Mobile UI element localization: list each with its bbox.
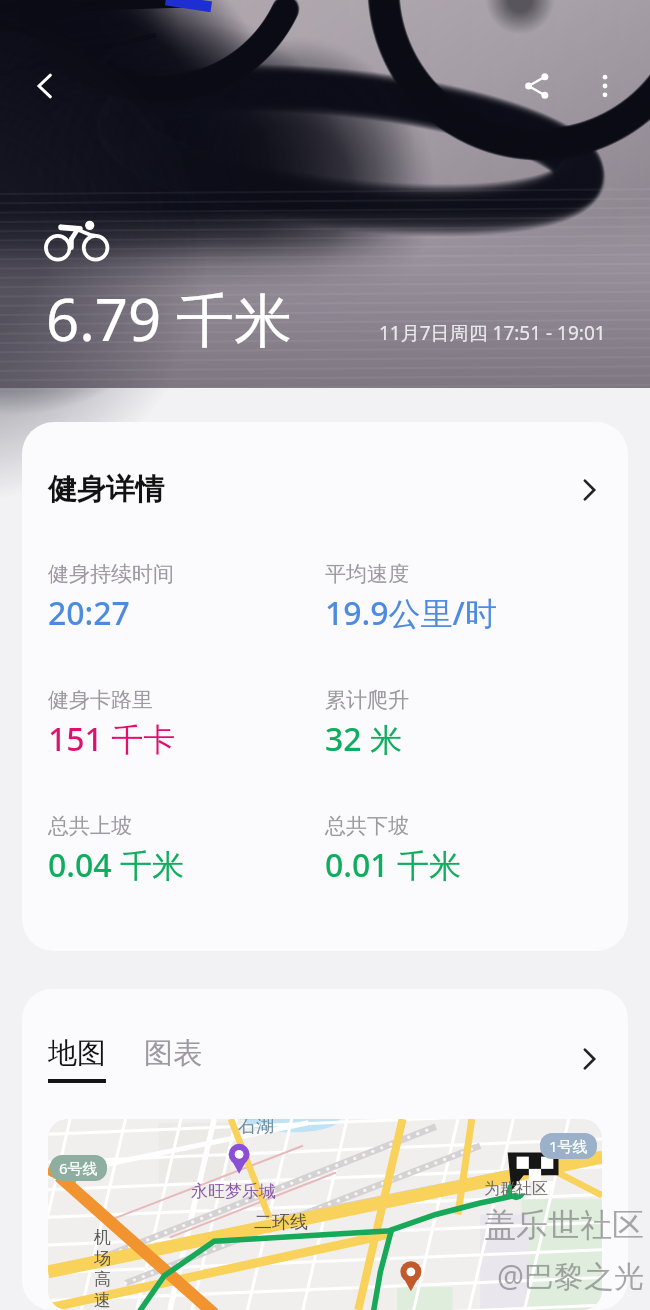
staticText: 平均速度 [325, 561, 409, 587]
staticText: 永旺梦乐城 [191, 1181, 276, 1202]
staticText: 机 [94, 1227, 111, 1248]
button[interactable]: 图表 [144, 1035, 202, 1083]
staticText: 累计爬升 [325, 687, 409, 713]
staticText: 健身详情 [48, 471, 164, 508]
staticText: 0.04 千米 [48, 843, 184, 887]
staticText: 6.79 千米 [46, 279, 293, 358]
staticText: 0.01 千米 [325, 843, 461, 887]
staticText: 19.9公里/时 [325, 591, 497, 635]
staticText: 健身持续时间 [48, 561, 174, 587]
staticText: 石湖 [238, 1119, 274, 1138]
staticText: 为群社区 [484, 1179, 548, 1199]
staticText: 1号线 [549, 1136, 588, 1156]
staticText: 图表 [144, 1035, 202, 1072]
staticText: 地图 [48, 1035, 106, 1072]
staticText: @巴黎之光 [497, 1255, 644, 1296]
staticText: 健身卡路里 [48, 687, 153, 713]
staticText: 盖乐世社区 [484, 1205, 644, 1245]
staticText: 速 [94, 1290, 111, 1310]
button[interactable]: 健身详情 [48, 471, 602, 508]
button[interactable]: Open map [576, 1046, 602, 1072]
staticText: 151 千卡 [48, 717, 176, 761]
button[interactable]: Back [16, 57, 74, 115]
staticText: 总共下坡 [325, 813, 409, 839]
button[interactable]: More options [576, 57, 634, 115]
button[interactable]: Share [508, 57, 566, 115]
staticText: 二环线 [254, 1211, 308, 1234]
staticText: 6号线 [59, 1158, 98, 1178]
staticText: 32 米 [325, 717, 402, 761]
staticText: 场 [94, 1248, 111, 1269]
staticText: 20:27 [48, 591, 130, 635]
button[interactable]: Route map [48, 1119, 602, 1310]
staticText: 总共上坡 [48, 813, 132, 839]
button[interactable]: 地图 [48, 1035, 106, 1083]
staticText: 11月7日周四 17:51 - 19:01 [379, 320, 606, 346]
staticText: 高 [94, 1269, 111, 1290]
